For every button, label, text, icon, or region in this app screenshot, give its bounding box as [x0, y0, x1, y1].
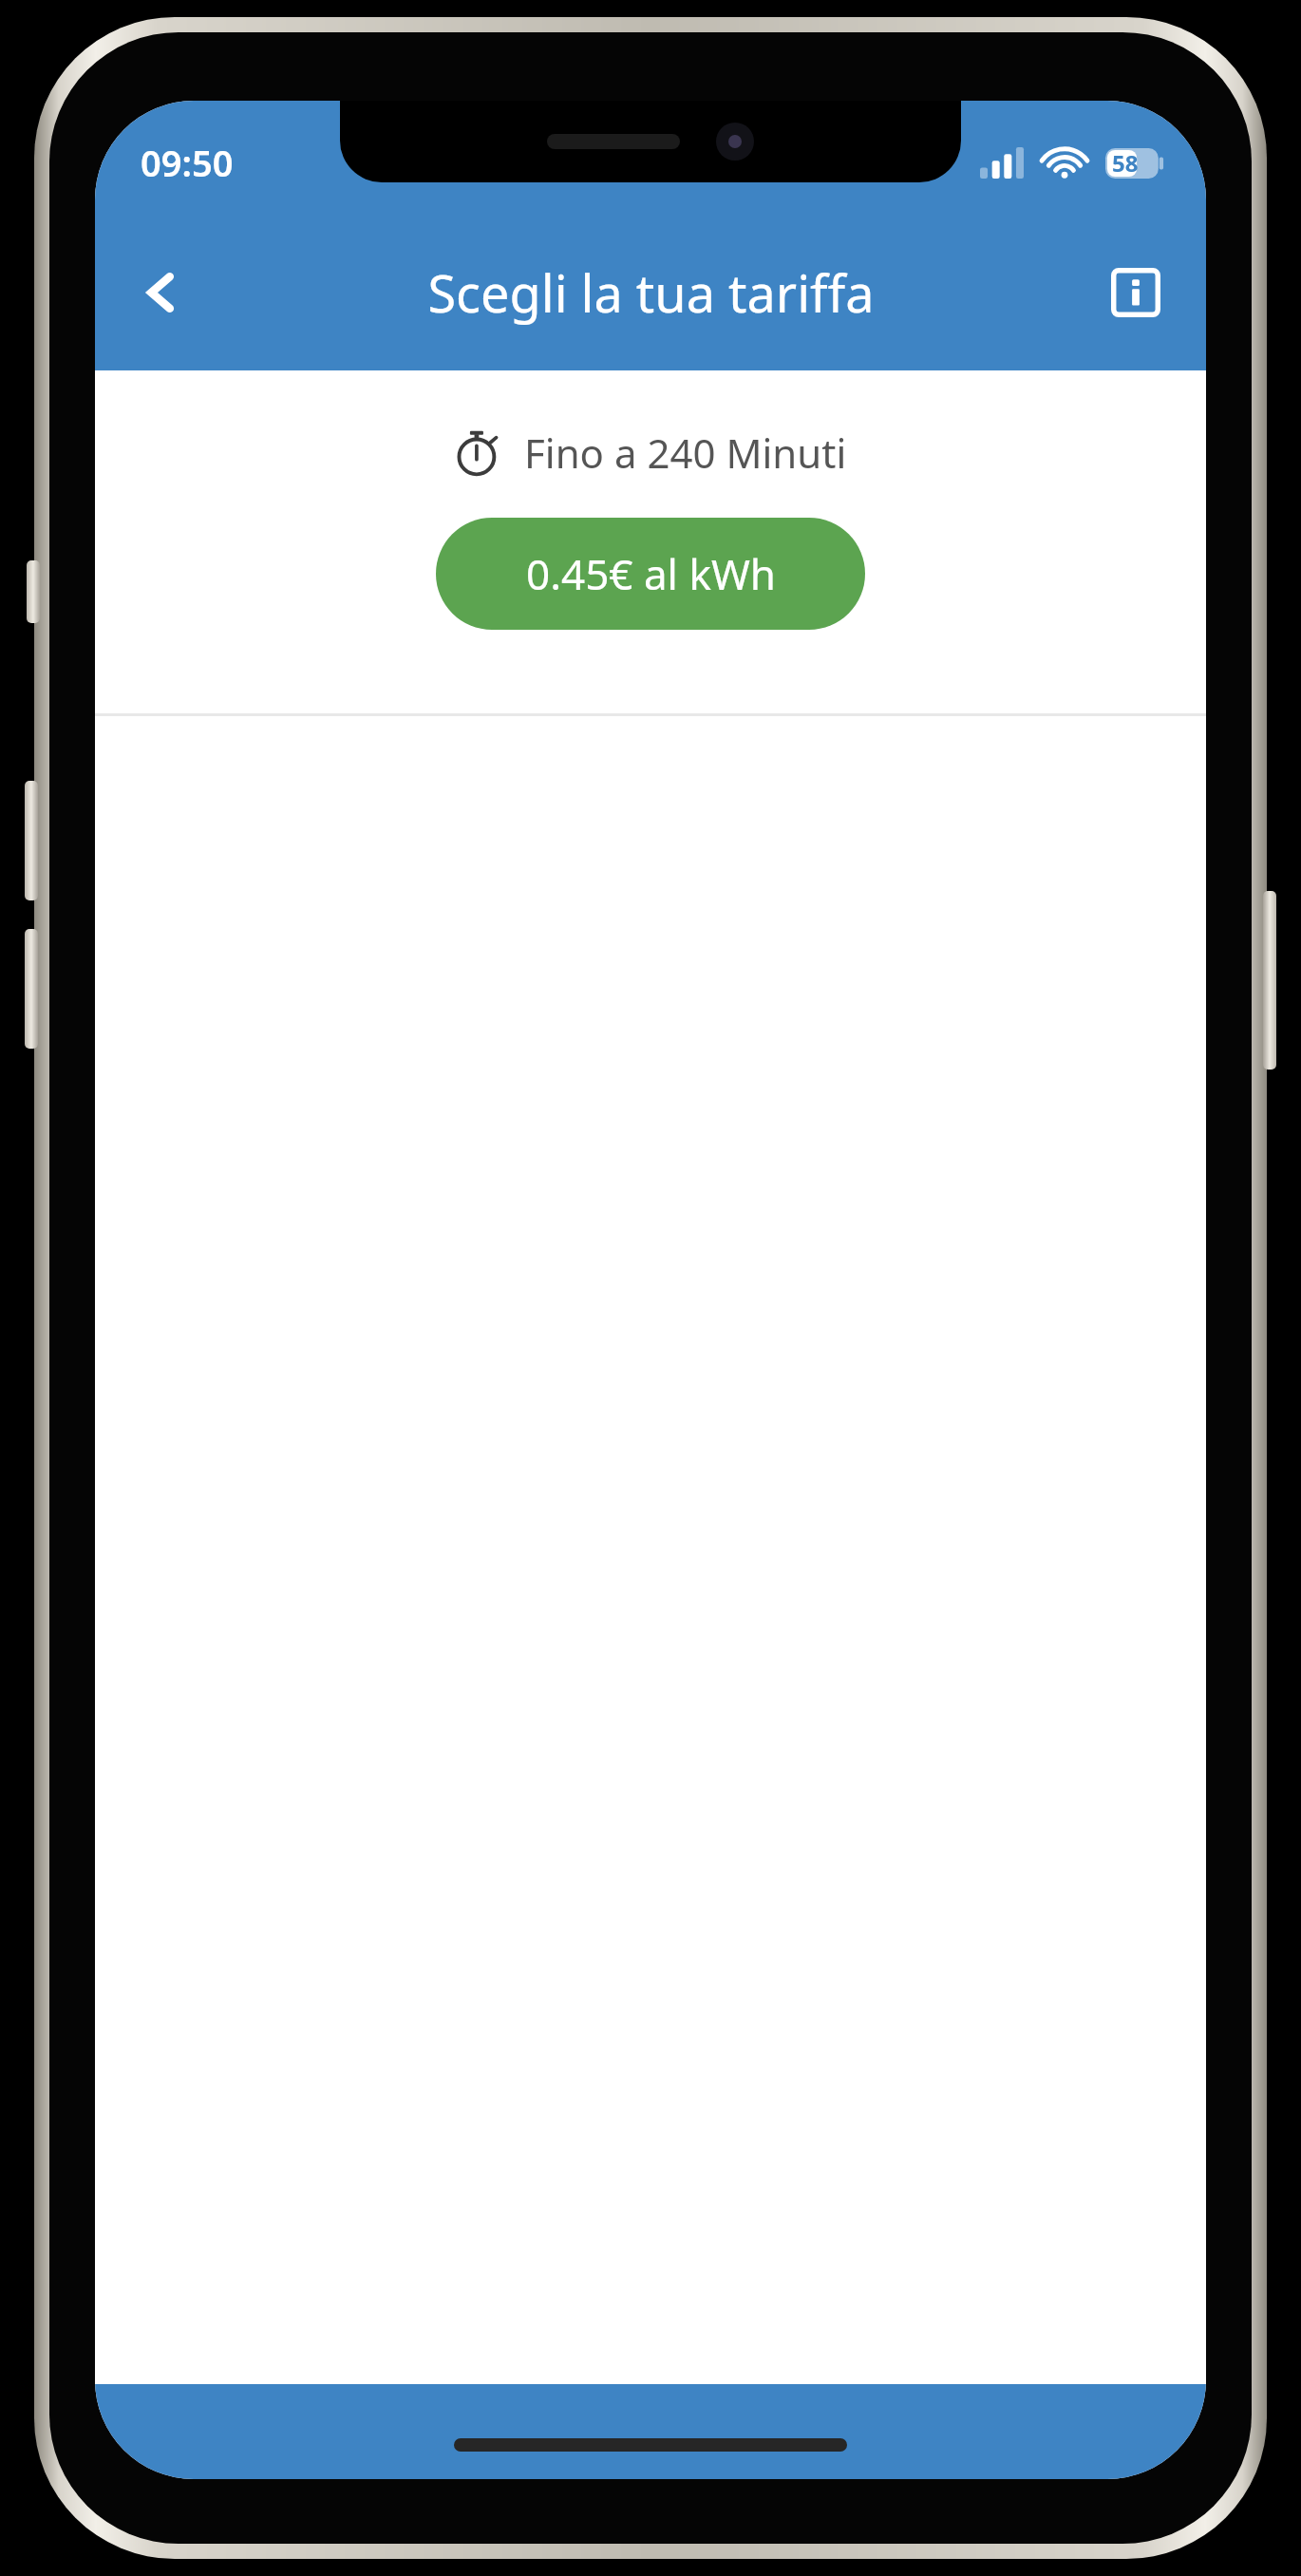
button[interactable]: Indietro: [116, 247, 207, 338]
button[interactable]: Informazioni: [1090, 247, 1181, 338]
staticText: 09:50: [141, 138, 234, 187]
staticText: 0.45€ al kWh: [526, 545, 776, 602]
staticText: Fino a 240 Minuti: [524, 426, 847, 480]
button[interactable]: 0.45€ al kWh: [436, 518, 865, 630]
staticText: 58: [1112, 147, 1139, 179]
staticText: Scegli la tua tariffa: [427, 257, 875, 328]
